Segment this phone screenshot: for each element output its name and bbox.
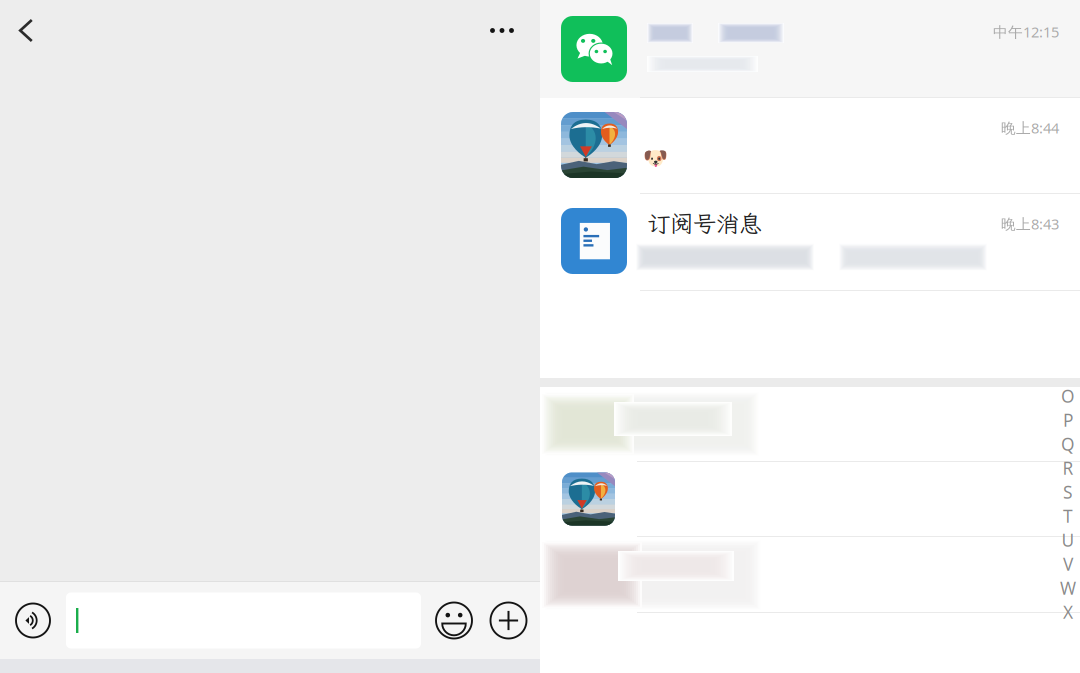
staticText: 中午12:15: [993, 22, 1059, 41]
button[interactable]: [540, 462, 1080, 537]
button[interactable]: More: [464, 0, 540, 61]
button[interactable]: More options: [487, 582, 530, 659]
button[interactable]: 🐶: [540, 98, 1080, 194]
button[interactable]: Message input: [66, 582, 421, 659]
button[interactable]: Back: [0, 0, 52, 61]
staticText: O: [1061, 384, 1075, 407]
staticText: 晚上8:43: [1001, 214, 1059, 233]
button[interactable]: 中午12:15: [540, 0, 1080, 98]
staticText: T: [1063, 504, 1073, 527]
button[interactable]: Voice message: [0, 582, 66, 659]
button[interactable]: [540, 387, 1080, 462]
staticText: 🐶: [643, 147, 668, 170]
staticText: 订阅号消息: [647, 208, 762, 239]
staticText: V: [1063, 552, 1073, 575]
staticText: X: [1063, 600, 1073, 623]
button[interactable]: Emoji: [421, 582, 487, 659]
staticText: R: [1062, 456, 1073, 479]
staticText: 晚上8:44: [1001, 118, 1059, 137]
staticText: U: [1061, 528, 1074, 551]
button[interactable]: [540, 537, 1080, 613]
staticText: P: [1063, 408, 1073, 431]
staticText: Q: [1061, 432, 1075, 455]
staticText: S: [1063, 480, 1073, 503]
staticText: W: [1060, 576, 1076, 599]
button[interactable]: Alphabet index: [1056, 389, 1080, 619]
button[interactable]: 订阅号消息: [540, 194, 1080, 291]
